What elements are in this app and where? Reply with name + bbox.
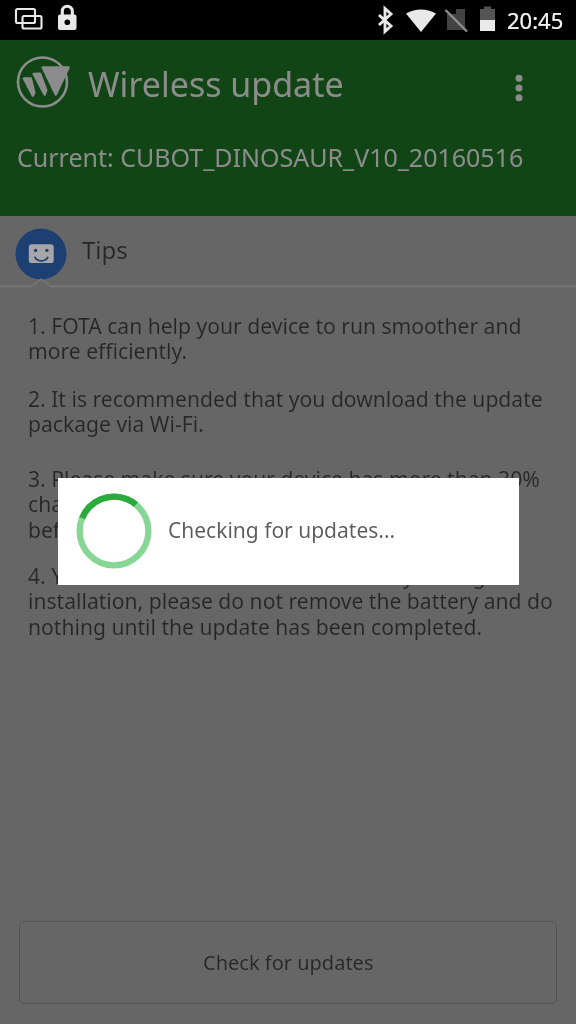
staticText: Wireless update xyxy=(88,61,344,107)
staticText: 3. Please make sure your device has more… xyxy=(28,464,553,545)
staticText: Check for updates xyxy=(203,949,374,976)
staticText: 1. FOTA can help your device to run smoo… xyxy=(28,311,553,366)
staticText: 20:45 xyxy=(507,5,564,35)
staticText: Tips xyxy=(82,233,128,266)
staticText: 2. It is recommended that you download t… xyxy=(28,384,553,439)
staticText: Checking for updates... xyxy=(168,516,396,545)
button[interactable]: Tips xyxy=(0,216,576,288)
button[interactable]: More options xyxy=(491,60,547,116)
staticText: 4. Your device will reboot automatically… xyxy=(28,561,553,642)
staticText: Current: CUBOT_DINOSAUR_V10_20160516 xyxy=(17,140,524,174)
button[interactable]: Check for updates xyxy=(19,921,557,1004)
